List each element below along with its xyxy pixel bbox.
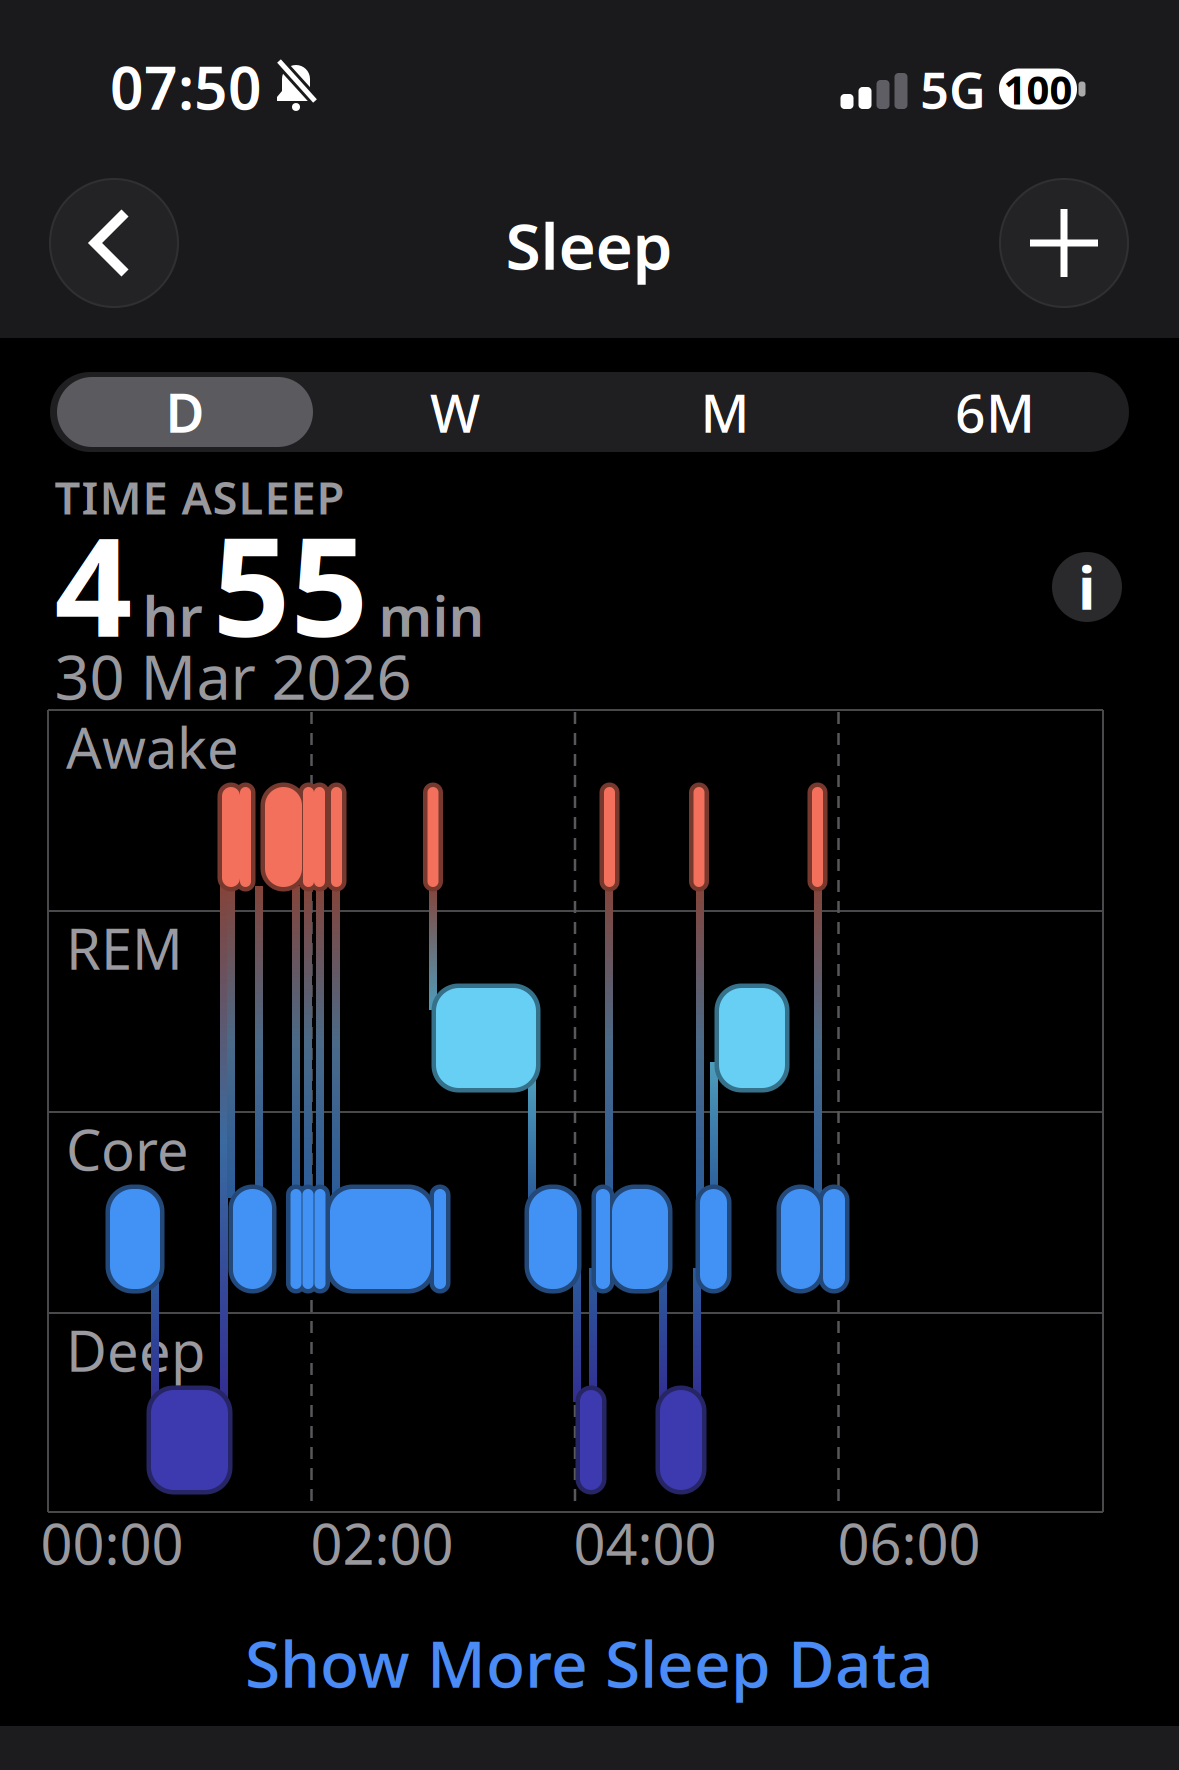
staticText: 55 bbox=[212, 494, 368, 674]
staticText: REM bbox=[66, 911, 183, 985]
staticText: min bbox=[378, 578, 484, 652]
button[interactable]: M bbox=[597, 377, 853, 447]
staticText: 07:50 bbox=[110, 48, 262, 126]
button[interactable]: More Info bbox=[1052, 552, 1122, 622]
staticText: Awake bbox=[66, 710, 239, 784]
staticText: Sleep bbox=[505, 202, 672, 287]
staticText: Deep bbox=[66, 1313, 205, 1387]
staticText: hr bbox=[142, 578, 202, 652]
staticText: 4 bbox=[54, 494, 132, 674]
staticText: Show More Sleep Data bbox=[245, 1620, 934, 1705]
staticText: 04:00 bbox=[573, 1506, 716, 1580]
staticText: 30 Mar 2026 bbox=[54, 635, 411, 717]
staticText: Core bbox=[66, 1112, 189, 1186]
button[interactable]: 6M bbox=[867, 377, 1123, 447]
button[interactable]: Back bbox=[50, 179, 178, 307]
staticText: 02:00 bbox=[310, 1506, 453, 1580]
button[interactable]: Add Data bbox=[1000, 179, 1128, 307]
staticText: i bbox=[1078, 548, 1096, 626]
staticText: M bbox=[700, 377, 749, 447]
button[interactable]: W bbox=[327, 377, 583, 447]
button[interactable]: Show More Sleep Data bbox=[245, 1620, 934, 1705]
staticText: 100 bbox=[1003, 62, 1072, 115]
staticText: W bbox=[430, 377, 480, 447]
staticText: 5G bbox=[920, 55, 986, 123]
staticText: 6M bbox=[955, 377, 1035, 447]
staticText: D bbox=[165, 377, 204, 447]
staticText: TIME ASLEEP bbox=[54, 467, 344, 527]
staticText: 00:00 bbox=[40, 1506, 183, 1580]
staticText: 06:00 bbox=[837, 1506, 980, 1580]
button[interactable]: D bbox=[57, 377, 313, 447]
